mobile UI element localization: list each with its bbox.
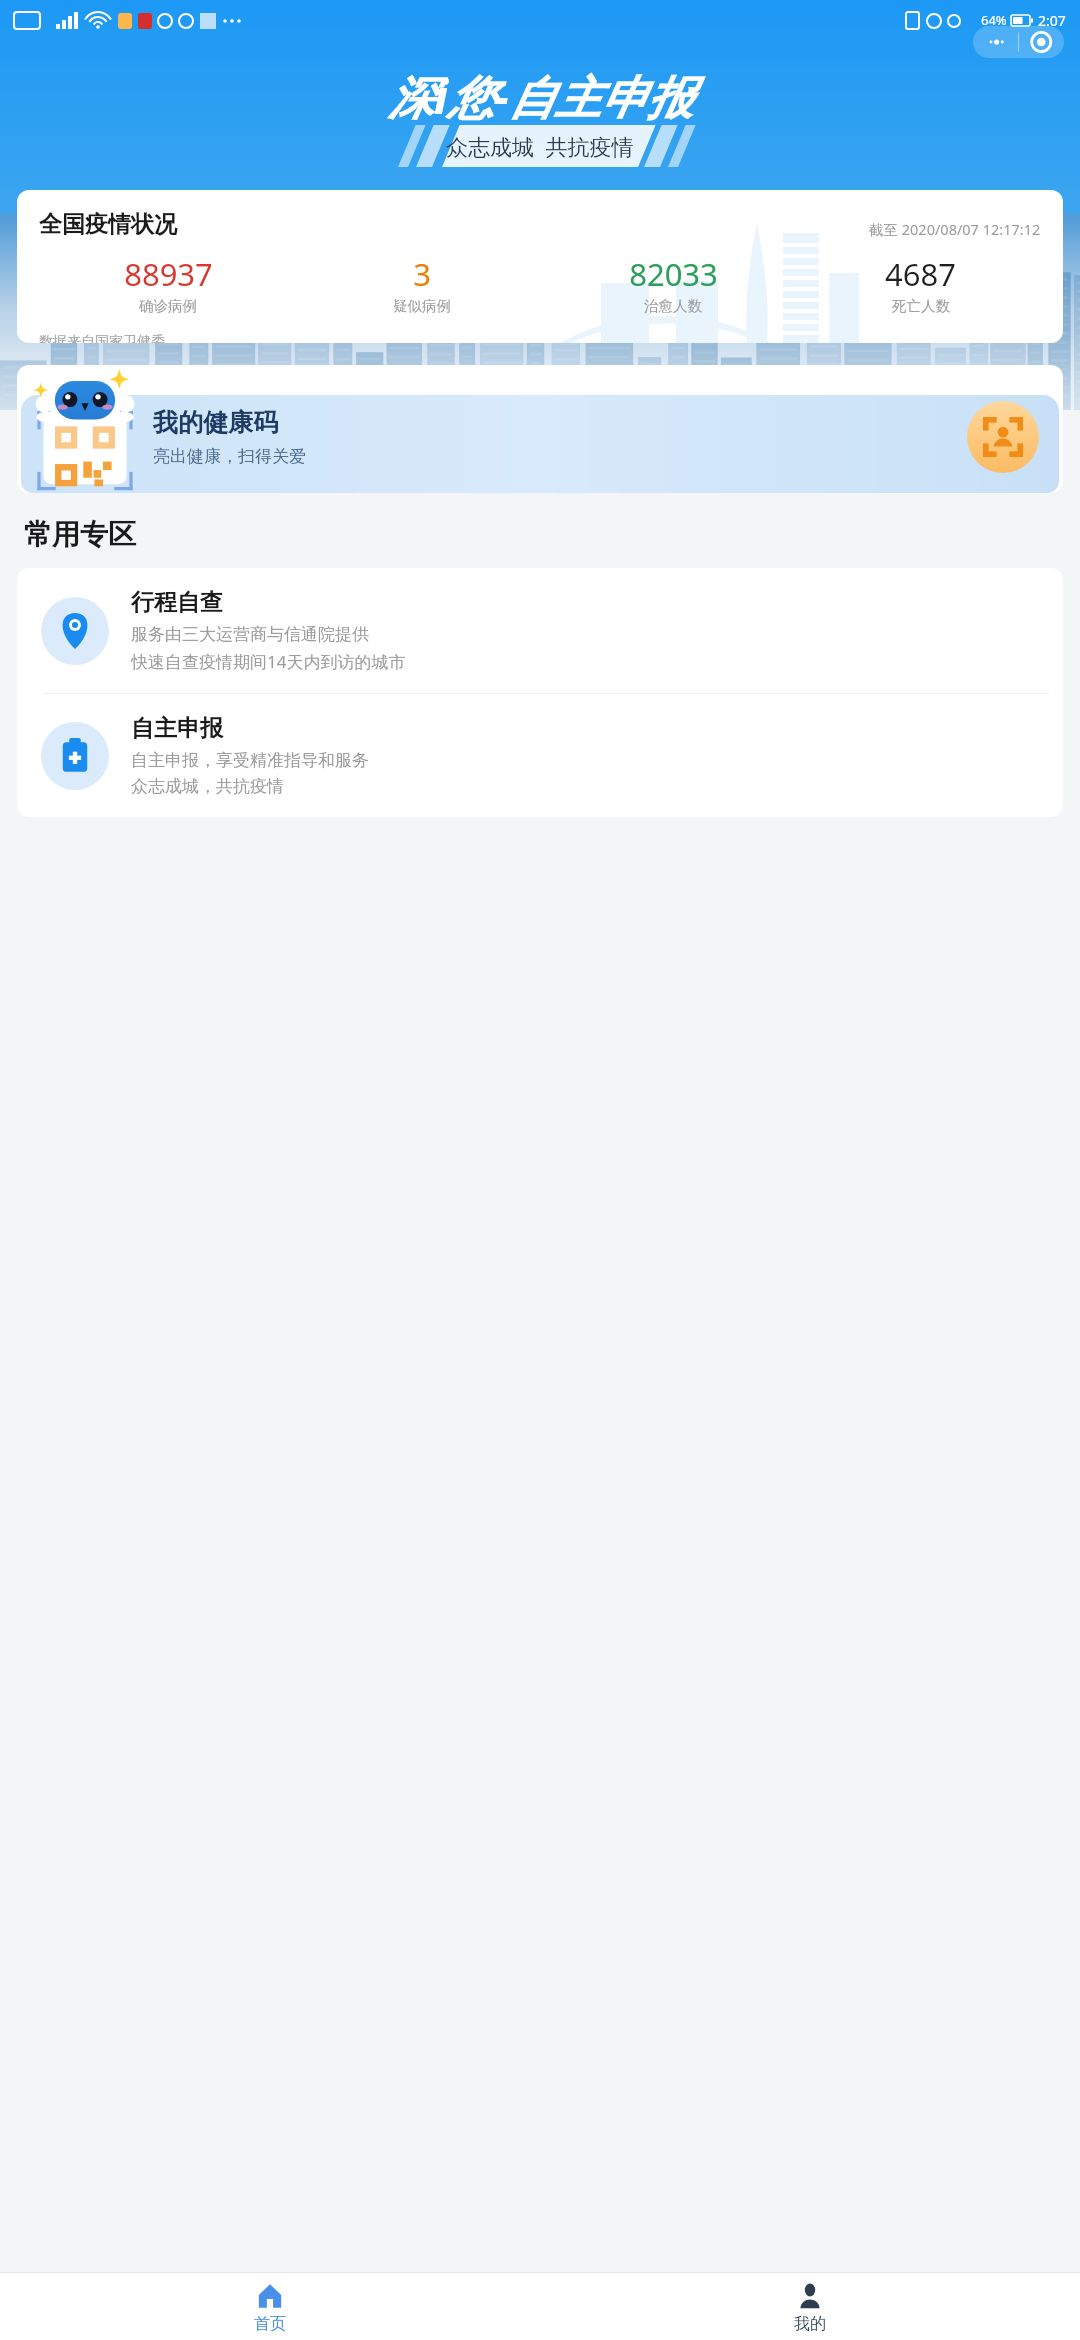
staticText: 治愈人数 xyxy=(644,297,702,315)
staticText: 64% xyxy=(981,11,1007,29)
staticText: 确诊病例 xyxy=(139,297,197,315)
button[interactable]: 自主申报 xyxy=(17,694,1063,817)
staticText: 2:07 xyxy=(1038,11,1066,30)
button[interactable]: 我的 xyxy=(540,2273,1080,2340)
staticText: 4687 xyxy=(885,253,956,295)
staticText: 数据来自国家卫健委 xyxy=(39,333,165,343)
button[interactable]: 首页 xyxy=(0,2273,540,2340)
staticText: 疑似病例 xyxy=(393,297,451,315)
staticText: 快速自查疫情期间14天内到访的城市 xyxy=(131,650,406,673)
staticText: 行程自查 xyxy=(131,588,223,617)
staticText: 首页 xyxy=(254,2314,286,2334)
staticText: 亮出健康，扫得关爱 xyxy=(153,446,306,467)
staticText: 88937 xyxy=(124,253,213,295)
staticText: 死亡人数 xyxy=(892,297,950,315)
button[interactable]: 行程自查 xyxy=(17,568,1063,693)
staticText: 众志成城 共抗疫情 xyxy=(446,131,634,161)
staticText: 3 xyxy=(413,253,431,295)
staticText: 截至 2020/08/07 12:17:12 xyxy=(869,219,1041,239)
staticText: 全国疫情状况 xyxy=(39,210,177,239)
staticText: 常用专区 xyxy=(24,517,136,552)
staticText: 82033 xyxy=(629,253,718,295)
button[interactable]: 全国疫情状况 xyxy=(17,190,1063,343)
button[interactable]: 扫一扫 Scan xyxy=(967,401,1039,473)
staticText: 自主申报 xyxy=(131,714,223,743)
staticText: 我的 xyxy=(794,2314,826,2334)
staticText: 深i您-自主申报 xyxy=(388,65,693,128)
staticText: 众志成城，共抗疫情 xyxy=(131,776,284,797)
button[interactable]: More and close xyxy=(973,26,1064,58)
button[interactable]: 我的健康码 亮出健康，扫得关爱 xyxy=(17,365,1063,493)
staticText: 我的健康码 xyxy=(153,407,278,438)
staticText: 自主申报，享受精准指导和服务 xyxy=(131,750,369,771)
staticText: 服务由三大运营商与信通院提供 xyxy=(131,624,369,645)
